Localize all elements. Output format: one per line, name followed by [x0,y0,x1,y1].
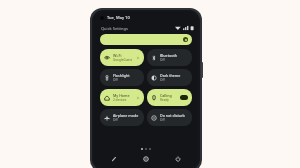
staticText: Ready [160,98,169,102]
button[interactable]: Airplane mode [100,109,144,126]
staticText: Tue, May 10 [107,15,130,20]
staticText: Off [113,78,118,82]
staticText: Wi-Fi [113,53,122,58]
staticText: Dark theme [160,73,181,78]
staticText: Bluetooth [160,53,178,58]
button[interactable]: Wi-Fi [100,49,144,66]
staticText: GoogleGuest [113,58,132,62]
button[interactable]: Calling [147,89,192,106]
staticText: Flashlight [113,73,130,78]
staticText: Quick Settings [101,26,128,31]
staticText: Off [160,78,165,82]
button[interactable]: Edit tiles [108,153,120,165]
button[interactable]: Power [172,153,184,165]
staticText: Do not disturb [160,113,185,118]
staticText: My Home [113,93,130,98]
staticText: Airplane mode [113,113,139,118]
button[interactable]: My Home [100,89,144,106]
button[interactable]: Do not disturb [147,109,192,126]
staticText: Off [160,58,165,62]
staticText: Off [160,118,165,122]
staticText: Calling [160,93,172,98]
button[interactable]: Brightness [100,34,192,45]
button[interactable]: Dark theme [147,69,192,86]
button[interactable]: Flashlight [100,69,144,86]
staticText: Off [113,118,118,122]
button[interactable]: Bluetooth [147,49,192,66]
button[interactable]: Settings [140,153,152,165]
staticText: 2 devices [113,98,127,102]
